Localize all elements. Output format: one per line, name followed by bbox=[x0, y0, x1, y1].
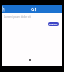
staticText: Lorem ipsum dolor sit bbox=[4, 15, 31, 19]
button[interactable]: More options bbox=[33, 5, 37, 13]
button[interactable]: SUBMIT bbox=[48, 22, 59, 26]
button[interactable]: Search bbox=[30, 5, 34, 13]
staticText: SUBMIT bbox=[49, 23, 58, 26]
button[interactable]: Menu bbox=[2, 5, 6, 13]
